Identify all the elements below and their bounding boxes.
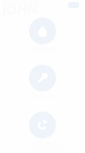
button[interactable]: Sync now <box>0 0 85 153</box>
button[interactable]: Service <box>0 0 85 153</box>
button[interactable]: Hydration <box>0 0 85 153</box>
